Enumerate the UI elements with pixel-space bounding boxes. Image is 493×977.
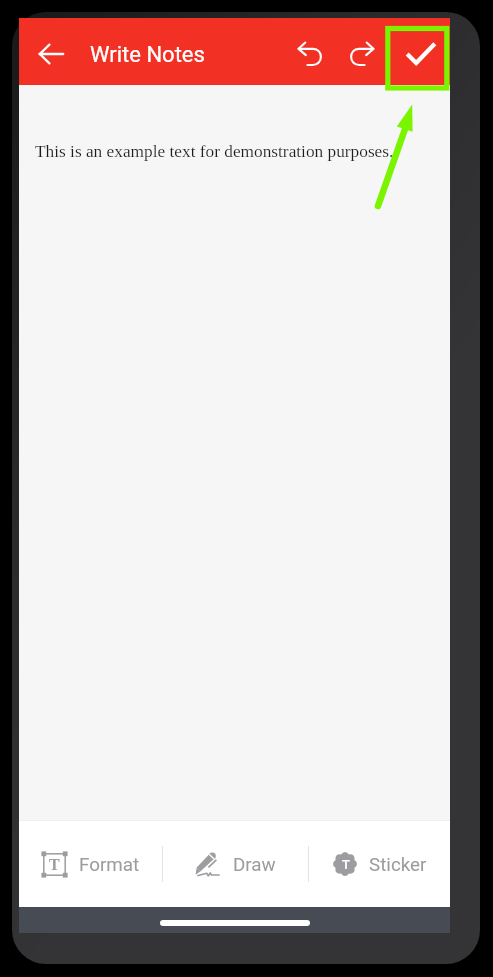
button[interactable]: Draw bbox=[163, 821, 308, 907]
staticText: Sticker bbox=[369, 854, 427, 876]
button[interactable]: T bbox=[19, 821, 162, 907]
staticText: T bbox=[342, 857, 350, 872]
staticText: Draw bbox=[233, 854, 276, 876]
button[interactable]: Redo bbox=[338, 29, 386, 77]
button[interactable]: Back bbox=[27, 30, 75, 78]
staticText: This is an example text for demonstratio… bbox=[35, 142, 394, 161]
staticText: Format bbox=[79, 854, 140, 876]
button[interactable]: Save note bbox=[393, 26, 449, 82]
staticText: T bbox=[49, 856, 60, 874]
button[interactable]: Undo bbox=[286, 29, 334, 77]
staticText: Write Notes bbox=[90, 42, 205, 68]
button[interactable]: T bbox=[309, 821, 450, 907]
